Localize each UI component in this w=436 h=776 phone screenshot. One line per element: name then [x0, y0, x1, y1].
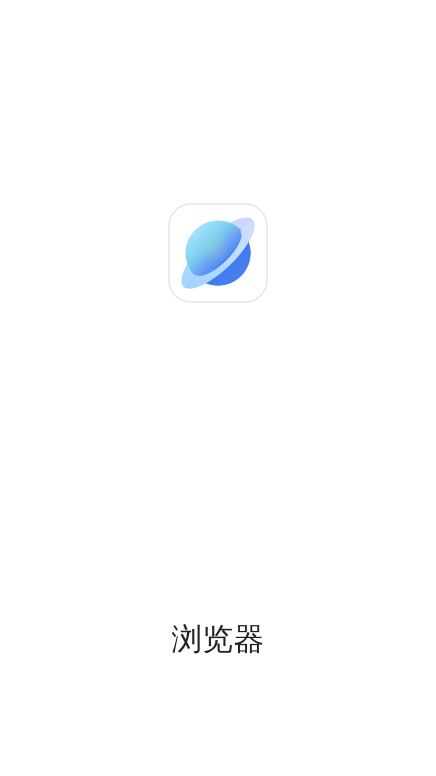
staticText: 浏览器 [171, 620, 264, 658]
